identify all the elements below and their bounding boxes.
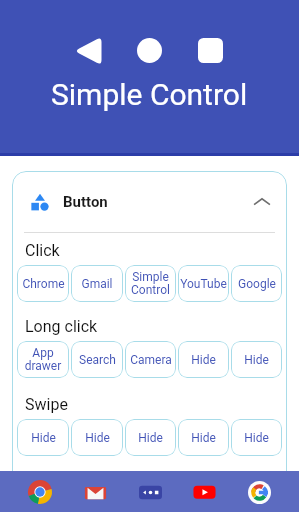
button[interactable]: Camera [125,341,176,378]
staticText: Button [63,193,108,211]
staticText: Hide [85,431,110,445]
button[interactable]: Chrome [25,477,55,507]
staticText: Hide [31,431,56,445]
button[interactable]: Hide [231,341,282,378]
staticText: Gmail [81,277,113,291]
button[interactable]: App drawer [17,341,69,378]
button[interactable]: Hide [178,419,229,456]
button[interactable]: YouTube [178,265,229,302]
staticText: Search [79,353,116,367]
button[interactable]: Hide [231,419,282,456]
button[interactable]: Button [12,171,287,232]
button[interactable]: Gmail [80,477,110,507]
button[interactable]: Search [71,341,123,378]
staticText: Hide [244,353,269,367]
button[interactable]: Chrome [17,265,69,302]
button[interactable]: Hide [178,341,229,378]
button[interactable]: YouTube [189,477,219,507]
staticText: Hide [138,431,163,445]
button[interactable]: Gmail [71,265,123,302]
button[interactable]: Hide [71,419,123,456]
staticText: Long click [25,317,98,336]
staticText: Hide [191,353,216,367]
button[interactable]: Simple Control [125,265,176,302]
button[interactable]: Back [76,39,100,63]
staticText: Google [238,277,276,291]
button[interactable]: Google [244,477,274,507]
button[interactable]: Home [137,38,162,63]
button[interactable]: Simple Control [135,477,165,507]
staticText: Hide [244,431,269,445]
button[interactable]: Hide [17,419,69,456]
button[interactable]: Recents [198,38,223,63]
staticText: YouTube [180,277,227,291]
staticText: Simple Control [125,270,176,297]
staticText: Hide [191,431,216,445]
staticText: Chrome [22,277,65,291]
staticText: App drawer [17,346,69,373]
staticText: Click [25,241,60,260]
staticText: Swipe [25,395,68,414]
button[interactable]: Hide [125,419,176,456]
button[interactable]: Collapse [251,191,273,213]
button[interactable]: Google [231,265,282,302]
staticText: Simple Control [51,77,248,112]
staticText: Camera [130,353,172,367]
